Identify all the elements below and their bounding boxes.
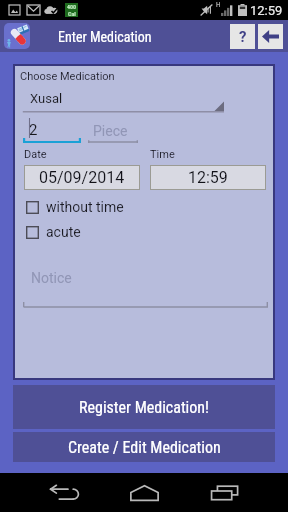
button[interactable]: 12:59 xyxy=(151,166,265,189)
button[interactable]: without time xyxy=(26,197,261,217)
staticText: Piece xyxy=(93,123,128,139)
staticText: Choose Medication xyxy=(20,70,115,83)
button[interactable]: Create / Edit Medication xyxy=(13,432,275,462)
staticText: Time xyxy=(150,148,175,161)
staticText: Notice xyxy=(31,270,72,286)
staticText: Date xyxy=(24,148,47,161)
button[interactable]: Register Medication! xyxy=(13,385,275,429)
staticText: 12:59 xyxy=(188,168,228,187)
staticText: acute xyxy=(46,224,81,240)
staticText: Create / Edit Medication xyxy=(68,438,221,457)
button[interactable]: Notice xyxy=(23,262,268,308)
button[interactable]: acute xyxy=(26,222,261,242)
button[interactable]: Home xyxy=(108,473,180,512)
staticText: 12:59 xyxy=(250,3,283,18)
staticText: 2 xyxy=(29,121,38,139)
staticText: H xyxy=(216,1,221,9)
staticText: 05/09/2014 xyxy=(39,168,125,187)
button[interactable]: Help xyxy=(230,24,255,49)
staticText: ? xyxy=(239,28,247,46)
button[interactable]: Choose medication xyxy=(22,87,225,113)
staticText: Enter Medication xyxy=(58,29,152,45)
button[interactable]: Back xyxy=(258,24,283,49)
button[interactable]: Recent apps xyxy=(189,473,261,512)
button[interactable]: Back xyxy=(28,473,100,512)
staticText: without time xyxy=(46,199,124,215)
button[interactable]: 05/09/2014 xyxy=(25,166,139,189)
staticText: Register Medication! xyxy=(79,398,210,417)
staticText: Xusal xyxy=(30,91,63,106)
staticText: 400 xyxy=(67,3,77,10)
staticText: Cal xyxy=(68,10,76,17)
